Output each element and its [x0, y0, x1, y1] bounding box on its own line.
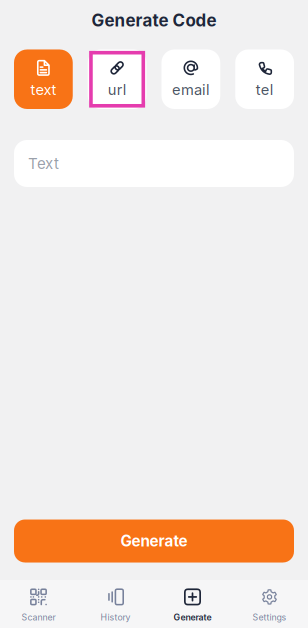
staticText: Text — [28, 154, 59, 173]
button[interactable]: Text — [14, 140, 294, 187]
button[interactable]: email — [161, 49, 220, 109]
staticText: text — [30, 81, 56, 99]
button[interactable]: Generate — [154, 588, 231, 622]
button[interactable]: Scanner — [0, 588, 77, 622]
staticText: tel — [256, 81, 274, 99]
staticText: email — [172, 81, 210, 99]
button[interactable]: Generate — [14, 519, 294, 562]
staticText: url — [108, 81, 127, 99]
staticText: Generate Code — [91, 10, 216, 30]
button[interactable]: url — [88, 49, 147, 109]
button[interactable]: History — [77, 588, 154, 622]
button[interactable]: tel — [235, 49, 294, 109]
staticText: Settings — [252, 612, 286, 622]
staticText: Generate — [120, 532, 187, 550]
staticText: History — [100, 612, 130, 622]
button[interactable]: Settings — [231, 588, 308, 622]
staticText: Generate — [173, 612, 211, 622]
staticText: Scanner — [21, 612, 55, 622]
button[interactable]: text — [14, 49, 73, 109]
